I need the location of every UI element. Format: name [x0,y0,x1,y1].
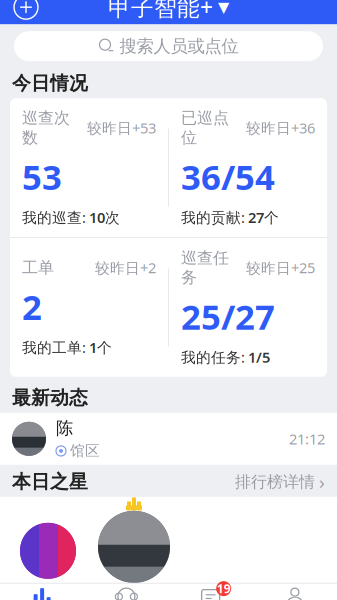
staticText: 我的巡查: [22,207,86,227]
staticText: 36/54 [181,153,275,199]
button[interactable]: 统计 [0,581,84,600]
staticText: 本日之星 [12,470,88,493]
staticText: 较昨日+36 [246,118,315,138]
staticText: 巡查任务 [181,248,229,287]
staticText: 甲子智能+ [108,0,213,22]
staticText: 搜索人员或点位 [119,35,238,57]
staticText: 我的工单: [22,337,86,357]
staticText: 较昨日+25 [246,258,315,277]
button[interactable]: Top star user [86,497,182,583]
staticText: 最新动态 [12,386,88,409]
staticText: 较昨日+53 [87,118,156,138]
button[interactable]: 陈 [0,413,337,465]
staticText: 53 [22,153,62,199]
staticText: 25/27 [181,293,275,339]
staticText: 1个 [89,337,112,357]
button[interactable]: 我的 [253,581,337,600]
staticText: 巡查次数 [22,108,70,147]
button[interactable]: 19 [168,581,253,600]
staticText: 我的贡献: [181,207,245,227]
staticText: 19 [217,581,231,597]
button[interactable]: 搜索人员或点位 [14,31,323,61]
staticText: 工单 [22,258,54,277]
staticText: ▼ [218,0,229,16]
button[interactable]: 巡查 [84,581,168,600]
button[interactable]: 排行榜详情 [235,465,325,498]
staticText: 2 [22,283,42,329]
staticText: 27个 [248,207,279,227]
staticText: 今日情况 [12,72,88,95]
staticText: 1/5 [248,347,270,367]
staticText: › [319,469,325,494]
button[interactable]: Add [6,0,46,24]
staticText: 21:12 [289,429,325,449]
staticText: 较昨日+2 [95,258,156,277]
staticText: 已巡点位 [181,108,229,147]
staticText: 我的任务: [181,347,245,367]
staticText: 陈 [56,418,73,439]
staticText: 10次 [89,207,120,227]
button[interactable]: Second place user [10,523,86,583]
staticText: 排行榜详情 [235,472,315,492]
staticText: 馆区 [70,442,100,460]
